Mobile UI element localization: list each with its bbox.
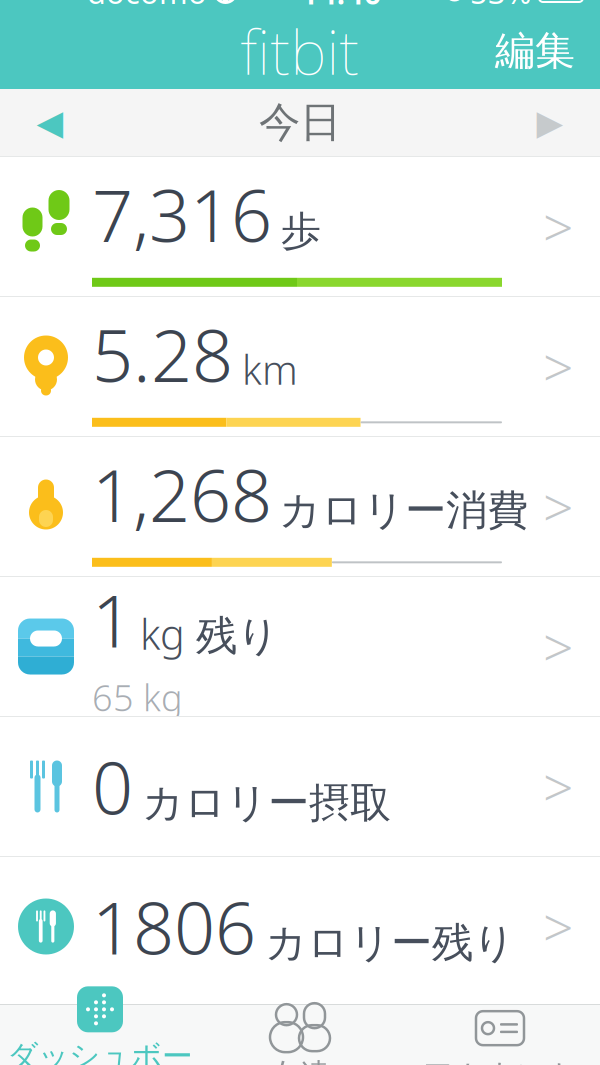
staticText: > bbox=[543, 471, 573, 542]
button[interactable]: 1,268 bbox=[0, 437, 600, 576]
staticText: カロリー残り bbox=[265, 917, 515, 968]
staticText: 0 bbox=[92, 739, 133, 834]
staticText: カロリー消費 bbox=[279, 485, 528, 536]
staticText: kg 残り bbox=[140, 606, 279, 661]
button[interactable]: 0 bbox=[0, 717, 600, 856]
button[interactable]: 友達 bbox=[200, 1005, 400, 1065]
staticText: 65 kg bbox=[92, 673, 183, 721]
staticText: ◀ bbox=[36, 103, 63, 142]
staticText: 編集 bbox=[495, 26, 575, 75]
staticText: > bbox=[543, 191, 573, 262]
button[interactable]: 次の日 bbox=[500, 89, 600, 156]
staticText: 1 bbox=[92, 572, 133, 667]
staticText: 歩 bbox=[281, 207, 321, 256]
staticText: ダッシュボード bbox=[7, 1037, 193, 1065]
staticText: > bbox=[543, 331, 573, 402]
button[interactable]: 編集 bbox=[470, 13, 600, 89]
staticText: 友達 bbox=[269, 1056, 331, 1065]
staticText: > bbox=[543, 751, 573, 822]
staticText: 7,316 bbox=[92, 166, 272, 262]
staticText: docomo bbox=[87, 0, 207, 12]
staticText: 今日 bbox=[259, 97, 341, 148]
button[interactable]: ダッシュボード bbox=[0, 1005, 200, 1065]
staticText: > bbox=[543, 891, 573, 962]
staticText: km bbox=[242, 343, 298, 396]
staticText: fitbit bbox=[240, 10, 359, 92]
button[interactable]: 5.28 bbox=[0, 297, 600, 436]
staticText: ▶ bbox=[536, 103, 563, 142]
staticText: > bbox=[543, 611, 573, 682]
button[interactable]: アカウント bbox=[400, 1005, 600, 1065]
button[interactable]: 前の日 bbox=[0, 89, 100, 156]
staticText: アカウント bbox=[422, 1056, 577, 1065]
button[interactable]: 7,316 bbox=[0, 157, 600, 296]
staticText: 5.28 bbox=[92, 306, 233, 402]
staticText: 1,268 bbox=[92, 446, 272, 542]
button[interactable]: 1806 bbox=[0, 857, 600, 996]
button[interactable]: 1 bbox=[0, 577, 600, 716]
staticText: 1806 bbox=[92, 879, 256, 974]
staticText: 53% bbox=[470, 0, 531, 12]
staticText: 14:40 bbox=[300, 0, 381, 13]
staticText: カロリー摂取 bbox=[142, 777, 391, 828]
